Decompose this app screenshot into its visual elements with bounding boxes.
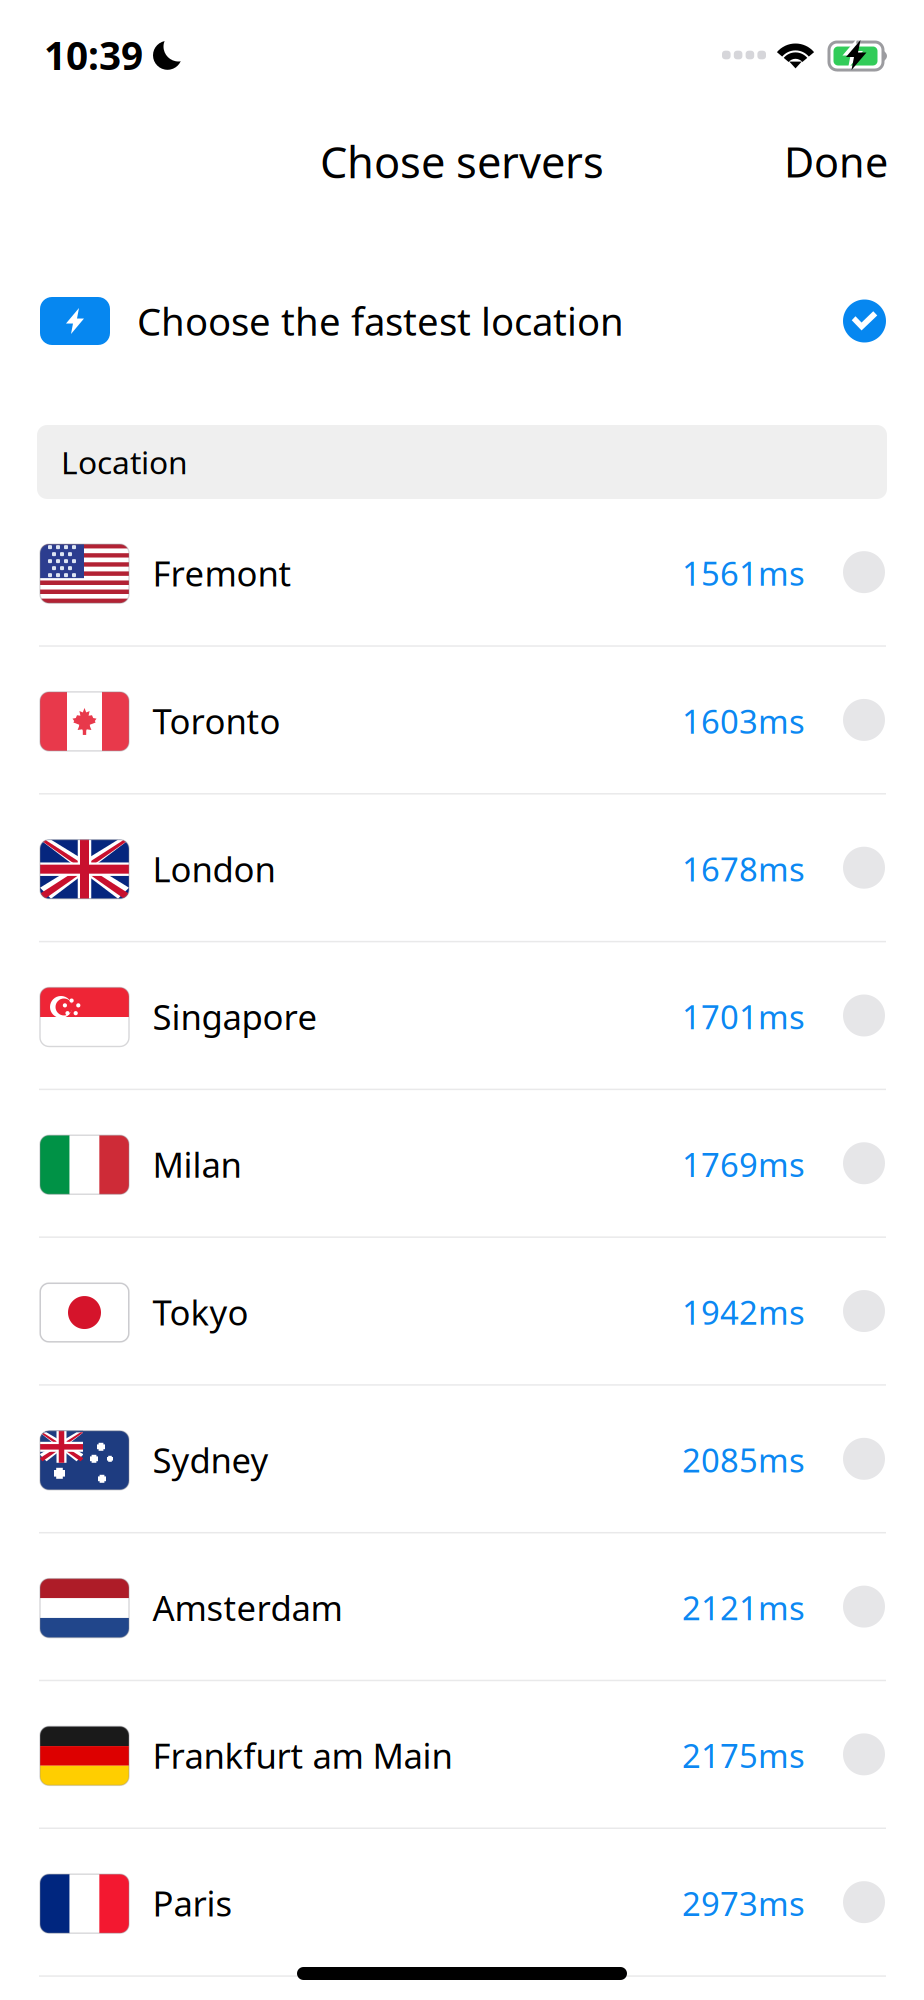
staticText: Location xyxy=(61,440,188,484)
button[interactable]: Singapore xyxy=(0,942,924,1090)
staticText: Frankfurt am Main xyxy=(152,1732,452,1779)
staticText: 1603ms xyxy=(682,699,805,743)
staticText: Milan xyxy=(152,1141,241,1188)
staticText: 2085ms xyxy=(682,1437,805,1482)
staticText: 2175ms xyxy=(682,1733,805,1778)
button[interactable]: Toronto xyxy=(0,647,924,795)
button[interactable]: Fremont xyxy=(0,499,924,647)
staticText: Chose servers xyxy=(320,132,604,191)
button[interactable]: Amsterdam xyxy=(0,1533,924,1681)
staticText: 1678ms xyxy=(682,846,805,891)
staticText: 1561ms xyxy=(682,551,805,595)
staticText: Singapore xyxy=(152,993,317,1040)
button[interactable]: Frankfurt am Main xyxy=(0,1681,924,1829)
button[interactable]: Done xyxy=(784,115,924,208)
button[interactable]: Paris xyxy=(0,1829,924,1977)
staticText: London xyxy=(152,845,275,892)
staticText: 1701ms xyxy=(682,994,805,1039)
staticText: 1942ms xyxy=(682,1290,805,1334)
staticText: Fremont xyxy=(152,549,291,597)
staticText: 10:39 xyxy=(44,29,143,81)
staticText: Tokyo xyxy=(152,1288,248,1336)
staticText: Toronto xyxy=(152,697,280,744)
button[interactable]: Milan xyxy=(0,1090,924,1238)
button[interactable]: Sydney xyxy=(0,1386,924,1533)
staticText: Paris xyxy=(152,1880,232,1927)
staticText: Done xyxy=(784,133,888,190)
staticText: 2121ms xyxy=(682,1585,805,1630)
staticText: 1769ms xyxy=(682,1142,805,1187)
staticText: Choose the fastest location xyxy=(137,295,624,347)
staticText: 2973ms xyxy=(682,1881,805,1925)
staticText: Amsterdam xyxy=(152,1584,342,1631)
button[interactable]: Choose the fastest location xyxy=(0,297,924,345)
staticText: Sydney xyxy=(152,1436,268,1483)
button[interactable]: London xyxy=(0,795,924,942)
button[interactable]: Tokyo xyxy=(0,1238,924,1386)
